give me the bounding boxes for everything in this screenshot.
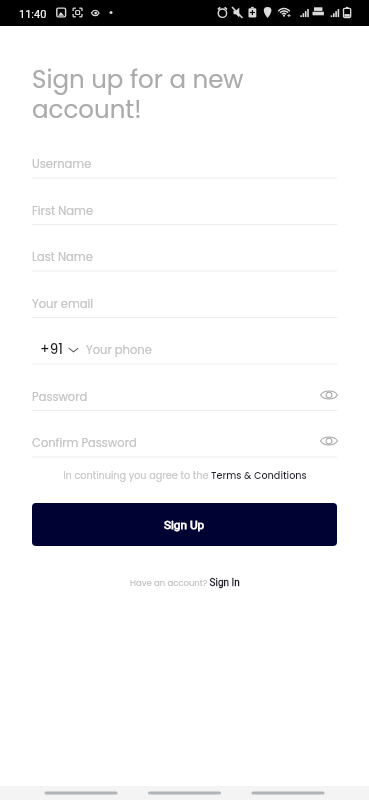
button[interactable]: Have an account? Sign In [130, 577, 240, 589]
staticText: Username [32, 156, 92, 172]
button[interactable]: Show password [317, 383, 341, 407]
staticText: Your phone [86, 342, 152, 358]
button[interactable]: Username [32, 149, 337, 178]
button[interactable]: Sign Up [32, 503, 337, 546]
staticText: Last Name [32, 249, 93, 265]
staticText: Confirm Password [32, 435, 137, 451]
button[interactable]: Your email [32, 289, 337, 318]
button[interactable]: Last Name [32, 242, 337, 271]
button[interactable]: Password [32, 382, 337, 411]
staticText: Your email [32, 296, 94, 312]
staticText: +91 [40, 340, 63, 359]
button[interactable]: First Name [32, 196, 337, 225]
staticText: Password [32, 389, 88, 405]
staticText: Sign up for a new account! [32, 62, 292, 127]
staticText: First Name [32, 203, 94, 219]
button[interactable]: Confirm Password [32, 428, 337, 457]
staticText: Sign Up [164, 518, 205, 532]
button[interactable]: +91 [40, 340, 79, 359]
button[interactable]: In continuing you agree to the Terms & C… [63, 469, 307, 483]
staticText: 11:40 [19, 8, 47, 21]
button[interactable]: Show password [317, 429, 341, 453]
